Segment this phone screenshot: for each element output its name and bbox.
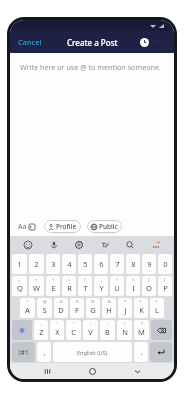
button[interactable]: 4 — [62, 254, 76, 274]
staticText: ? — [141, 321, 143, 326]
staticText: D — [58, 305, 64, 315]
staticText: 1 — [17, 259, 22, 269]
button[interactable]: ] — [158, 276, 172, 296]
button[interactable]: Aa — [17, 221, 36, 233]
button[interactable]: More options — [149, 238, 163, 252]
staticText: N — [122, 327, 128, 337]
button[interactable]: Enter — [150, 342, 172, 362]
button[interactable]: ' — [50, 320, 64, 340]
staticText: 4 — [67, 259, 72, 269]
button[interactable]: Settings — [72, 238, 86, 252]
button[interactable]: ? — [134, 320, 149, 340]
staticText: ) — [156, 299, 158, 304]
button[interactable]: _ — [94, 276, 108, 296]
button[interactable]: . — [134, 342, 148, 362]
button[interactable]: % — [86, 298, 100, 318]
button[interactable]: Cancel — [15, 34, 45, 50]
button[interactable]: Search — [123, 238, 137, 252]
staticText: B — [105, 327, 110, 337]
button[interactable]: 7 — [110, 254, 124, 274]
button[interactable]: ) — [150, 298, 164, 318]
staticText: $ — [76, 299, 79, 304]
button[interactable]: × — [29, 276, 44, 296]
staticText: English (US) — [77, 349, 108, 356]
button[interactable]: Home — [84, 363, 100, 379]
staticText: @ — [43, 299, 47, 304]
button[interactable]: Write here or use @ to mention someone. — [10, 53, 174, 217]
staticText: M — [138, 327, 145, 337]
staticText: O — [146, 283, 152, 293]
button[interactable]: English (US) — [53, 342, 132, 362]
staticText: Public — [99, 222, 118, 231]
button[interactable]: Back — [129, 363, 145, 379]
staticText: T — [83, 283, 88, 293]
staticText: Profile — [56, 222, 77, 231]
button[interactable]: Public — [87, 220, 122, 233]
button[interactable]: 3 — [46, 254, 60, 274]
button[interactable]: Schedule — [138, 35, 170, 49]
button[interactable]: Backspace — [151, 320, 172, 340]
button[interactable]: * — [118, 298, 132, 318]
button[interactable]: ! — [117, 320, 132, 340]
button[interactable]: Profile — [44, 220, 81, 233]
button[interactable]: ÷ — [46, 276, 60, 296]
button[interactable]: , — [37, 342, 51, 362]
button[interactable]: + — [12, 276, 27, 296]
staticText: C — [71, 327, 76, 337]
button[interactable]: 1 — [12, 254, 27, 274]
button[interactable]: ( — [134, 298, 148, 318]
button[interactable]: & — [102, 298, 116, 318]
button[interactable]: 9 — [142, 254, 156, 274]
button[interactable]: 0 — [158, 254, 172, 274]
staticText: ÷ — [52, 277, 55, 282]
staticText: ( — [140, 299, 142, 304]
button[interactable]: # — [54, 298, 68, 318]
button[interactable]: Shift — [12, 320, 32, 340]
button[interactable]: > — [126, 276, 140, 296]
staticText: 9 — [147, 259, 152, 269]
staticText: U — [114, 283, 120, 293]
staticText: J — [124, 305, 127, 315]
staticText: R — [67, 283, 72, 293]
button[interactable]: Translate — [98, 238, 112, 252]
button[interactable]: ! — [20, 298, 35, 318]
staticText: * — [124, 299, 127, 304]
button[interactable]: Recents — [39, 363, 55, 379]
staticText: _ — [100, 277, 102, 282]
staticText: [ — [148, 277, 150, 282]
button[interactable]: : — [83, 320, 98, 340]
button[interactable]: 2 — [29, 254, 44, 274]
staticText: V — [88, 327, 93, 337]
staticText: Write here or use @ to mention someone. — [20, 62, 161, 72]
staticText: Y — [99, 283, 104, 293]
staticText: Z — [39, 327, 44, 337]
button[interactable]: / — [78, 276, 92, 296]
staticText: . — [140, 347, 143, 357]
staticText: L — [155, 305, 159, 315]
button[interactable]: = — [62, 276, 76, 296]
button[interactable]: Voice input — [47, 238, 61, 252]
button[interactable]: " — [66, 320, 81, 340]
staticText: × — [35, 277, 38, 282]
staticText: ! — [124, 321, 126, 326]
button[interactable]: Emoji — [21, 238, 35, 252]
button[interactable]: [ — [142, 276, 156, 296]
staticText: A — [25, 305, 30, 315]
staticText: ] — [164, 277, 166, 282]
other: Formatting — [29, 224, 35, 230]
button[interactable]: 8 — [126, 254, 140, 274]
button[interactable]: 5 — [78, 254, 92, 274]
staticText: % — [91, 299, 95, 304]
staticText: , — [43, 347, 46, 357]
button[interactable]: - — [34, 320, 48, 340]
staticText: ' — [57, 321, 58, 326]
button[interactable]: !#1 — [12, 342, 35, 362]
button[interactable]: @ — [37, 298, 52, 318]
button[interactable]: < — [110, 276, 124, 296]
staticText: K — [139, 305, 144, 315]
button[interactable]: ; — [100, 320, 115, 340]
staticText: Cancel — [18, 37, 42, 47]
button[interactable]: $ — [70, 298, 84, 318]
button[interactable]: 6 — [94, 254, 108, 274]
staticText: F — [75, 305, 79, 315]
